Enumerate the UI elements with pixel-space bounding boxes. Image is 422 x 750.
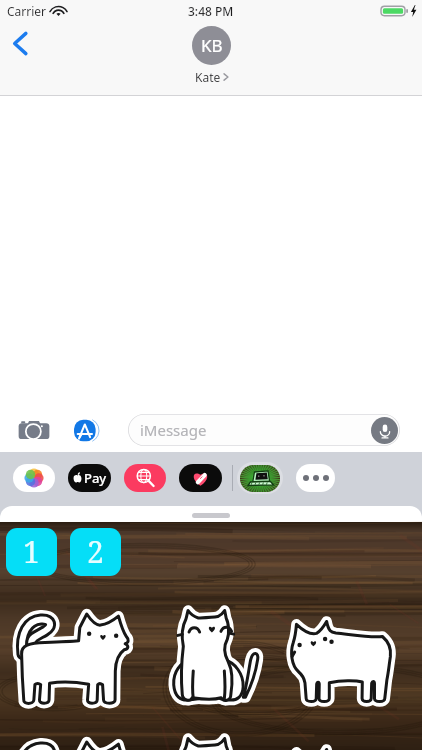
staticText: Pay (84, 469, 107, 487)
staticText: Carrier (7, 3, 47, 19)
button[interactable]: 1 (0, 522, 422, 750)
staticText: KB (201, 34, 223, 57)
button[interactable]: More apps (296, 464, 335, 492)
button[interactable]: KB (192, 22, 231, 85)
button[interactable]: Cat stickers app (237, 462, 283, 494)
staticText: 1 (23, 531, 40, 572)
button[interactable]: iMessage (128, 414, 400, 446)
button[interactable]: Back (0, 22, 41, 64)
button[interactable]: 2 (70, 528, 121, 576)
button[interactable]: 1 (6, 528, 57, 576)
staticText: Kate (195, 69, 221, 85)
button[interactable]: Apple Pay (68, 464, 111, 492)
button[interactable]: Photos (13, 464, 55, 492)
button[interactable]: Dictate (371, 417, 398, 444)
button[interactable]: App Store (72, 417, 99, 444)
staticText: 2 (87, 531, 104, 572)
staticText: iMessage (140, 420, 207, 440)
button[interactable]: Camera (18, 415, 50, 445)
button[interactable]: Images (124, 464, 166, 492)
button[interactable]: Digital Touch (179, 464, 222, 492)
staticText: 3:48 PM (188, 3, 234, 19)
